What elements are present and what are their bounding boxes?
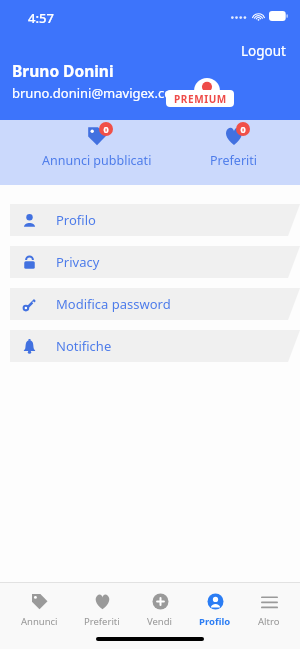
button[interactable]: Notifiche: [0, 330, 300, 362]
staticText: Preferiti: [210, 152, 258, 169]
staticText: 4:57: [28, 9, 54, 27]
button[interactable]: Privacy: [0, 246, 300, 278]
staticText: Preferiti: [84, 615, 120, 628]
staticText: Profilo: [199, 615, 231, 628]
staticText: Privacy: [56, 253, 100, 271]
button[interactable]: Profilo: [193, 591, 237, 630]
button[interactable]: Logout: [227, 38, 300, 64]
staticText: bruno.donini@mavigex.com: [12, 84, 185, 102]
staticText: 0: [103, 123, 109, 135]
button[interactable]: Modifica password: [0, 288, 300, 320]
staticText: Modifica password: [56, 295, 171, 313]
button[interactable]: Preferiti: [78, 591, 126, 630]
button[interactable]: Annunci: [15, 591, 64, 630]
staticText: Bruno Donini: [12, 60, 114, 81]
button[interactable]: Vendi: [141, 591, 179, 630]
staticText: Logout: [241, 42, 286, 60]
staticText: 0: [240, 123, 246, 135]
staticText: PREMIUM: [174, 92, 227, 106]
staticText: Vendi: [147, 615, 173, 628]
button[interactable]: 0: [194, 120, 274, 175]
button[interactable]: Profilo: [0, 204, 300, 236]
staticText: Annunci: [21, 615, 58, 628]
button[interactable]: Account premium: [232, 78, 300, 104]
button[interactable]: 0: [26, 120, 168, 175]
staticText: Notifiche: [56, 337, 112, 355]
staticText: Annunci pubblicati: [42, 152, 152, 169]
button[interactable]: Altro: [252, 591, 286, 630]
staticText: Profilo: [56, 211, 96, 229]
staticText: Altro: [258, 615, 280, 628]
